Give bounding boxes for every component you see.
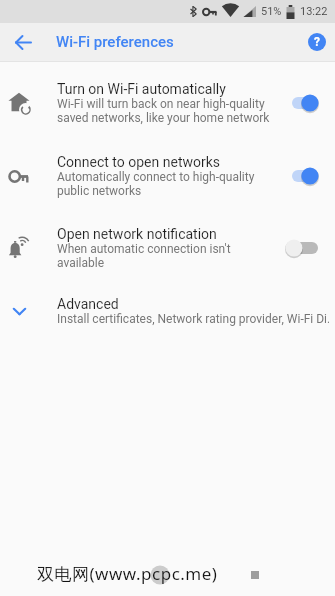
button[interactable] <box>285 91 335 115</box>
staticText: ? <box>314 35 320 49</box>
button[interactable]: Open network notification <box>0 226 335 270</box>
staticText: Wi‑Fi preferences <box>56 33 174 51</box>
staticText: Connect to open networks <box>57 154 221 170</box>
staticText: Turn on Wi‑Fi automatically <box>57 81 226 97</box>
button[interactable]: Connect to open networks <box>0 154 335 198</box>
button[interactable]: Advanced <box>0 296 335 326</box>
button[interactable] <box>285 164 335 188</box>
staticText: Install certificates, Network rating pro… <box>57 312 329 326</box>
staticText: Automatically connect to high-quality pu… <box>57 170 255 198</box>
staticText: Wi‑Fi will turn back on near high-qualit… <box>57 97 270 125</box>
staticText: Open network notification <box>57 226 217 242</box>
staticText: 13:22 <box>300 5 328 18</box>
staticText: 双电网(www.pcpc.me) <box>37 562 218 585</box>
button[interactable]: ? <box>308 33 326 51</box>
staticText: Advanced <box>57 296 119 312</box>
button[interactable] <box>285 236 335 260</box>
button[interactable]: Turn on Wi‑Fi automatically <box>0 81 335 125</box>
button[interactable] <box>10 29 36 55</box>
staticText: When automatic connection isn't availabl… <box>57 242 231 270</box>
staticText: 51% <box>261 5 282 18</box>
